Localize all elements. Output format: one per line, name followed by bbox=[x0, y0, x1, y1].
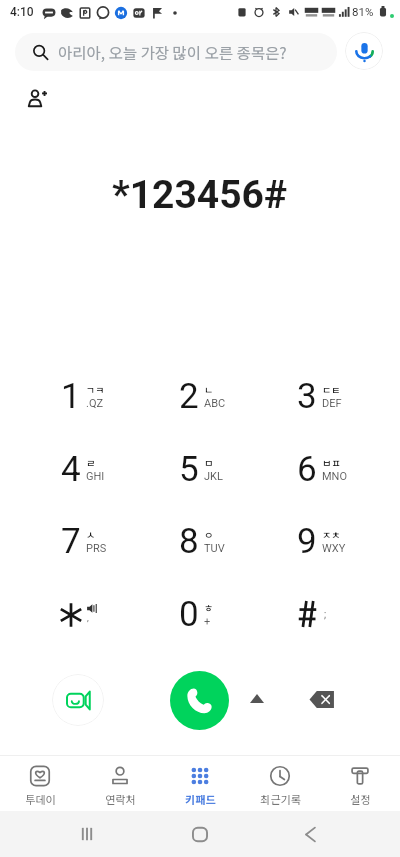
button[interactable]: Add contact bbox=[18, 79, 56, 117]
staticText: 키패드 bbox=[185, 791, 216, 807]
staticText: JKL bbox=[204, 470, 223, 483]
staticText: 8 bbox=[179, 521, 199, 562]
staticText: ㄷㅌ bbox=[322, 382, 341, 396]
staticText: 6 bbox=[297, 449, 317, 490]
button[interactable]: Voice search bbox=[345, 32, 383, 70]
button[interactable]: 5 bbox=[161, 436, 249, 502]
button[interactable]: 최근기록 bbox=[240, 756, 320, 812]
staticText: 5 bbox=[179, 449, 199, 490]
button[interactable]: , bbox=[43, 581, 131, 647]
staticText: ㄹ bbox=[86, 455, 96, 469]
button[interactable]: 투데이 bbox=[0, 756, 80, 812]
staticText: ㅇ bbox=[204, 527, 214, 541]
staticText: *123456# bbox=[112, 172, 288, 218]
button[interactable]: 0 bbox=[161, 581, 249, 647]
staticText: ㅁ bbox=[204, 455, 214, 469]
button[interactable]: Show options bbox=[242, 683, 272, 713]
button[interactable]: 설정 bbox=[320, 756, 400, 812]
button[interactable]: 3 bbox=[279, 363, 367, 429]
staticText: ㄱㅋ bbox=[86, 382, 105, 396]
staticText: + bbox=[204, 615, 211, 628]
button[interactable]: Video call bbox=[52, 674, 104, 726]
staticText: 7 bbox=[61, 521, 81, 562]
staticText: ㅅ bbox=[86, 527, 96, 541]
staticText: WXY bbox=[322, 542, 346, 555]
staticText: ㄴ bbox=[204, 382, 214, 396]
button[interactable]: Call bbox=[170, 671, 229, 730]
staticText: 0 bbox=[179, 594, 199, 635]
staticText: ㅂㅍ bbox=[322, 455, 341, 469]
staticText: 설정 bbox=[350, 791, 371, 807]
staticText: MNO bbox=[322, 470, 348, 483]
staticText: ; bbox=[324, 609, 327, 621]
staticText: 4 bbox=[61, 449, 81, 490]
staticText: 최근기록 bbox=[260, 791, 301, 807]
button[interactable]: 2 bbox=[161, 363, 249, 429]
staticText: 4:10 bbox=[10, 5, 34, 19]
button[interactable]: 7 bbox=[43, 508, 131, 574]
button[interactable]: 아리아, 오늘 가장 많이 오른 종목은? bbox=[15, 33, 337, 71]
button[interactable]: 연락처 bbox=[80, 756, 160, 812]
staticText: 2 bbox=[179, 376, 199, 417]
button[interactable]: 6 bbox=[279, 436, 367, 502]
button[interactable]: 1 bbox=[43, 363, 131, 429]
staticText: 9 bbox=[297, 521, 317, 562]
staticText: 연락처 bbox=[105, 791, 136, 807]
staticText: ㅈㅊ bbox=[322, 527, 341, 541]
button[interactable]: Back bbox=[289, 818, 331, 850]
button[interactable]: ; bbox=[279, 581, 367, 647]
staticText: 81% bbox=[352, 5, 374, 18]
button[interactable]: 9 bbox=[279, 508, 367, 574]
button[interactable]: Recents bbox=[66, 818, 108, 850]
staticText: 아리아, 오늘 가장 많이 오른 종목은? bbox=[58, 41, 287, 63]
button[interactable]: Backspace bbox=[302, 679, 342, 719]
staticText: ABC bbox=[204, 397, 226, 410]
button[interactable]: Home bbox=[179, 818, 221, 850]
staticText: .QZ bbox=[86, 397, 104, 410]
staticText: 1 bbox=[61, 376, 81, 417]
button[interactable]: 4 bbox=[43, 436, 131, 502]
staticText: DEF bbox=[322, 397, 342, 410]
staticText: 투데이 bbox=[25, 791, 56, 807]
button[interactable]: 키패드 bbox=[160, 756, 240, 812]
staticText: 3 bbox=[297, 376, 317, 417]
staticText: PRS bbox=[86, 542, 107, 555]
staticText: GHI bbox=[86, 470, 105, 483]
button[interactable]: 8 bbox=[161, 508, 249, 574]
staticText: TUV bbox=[204, 542, 225, 555]
staticText: , bbox=[87, 613, 89, 624]
staticText: ㅎ bbox=[204, 600, 214, 614]
